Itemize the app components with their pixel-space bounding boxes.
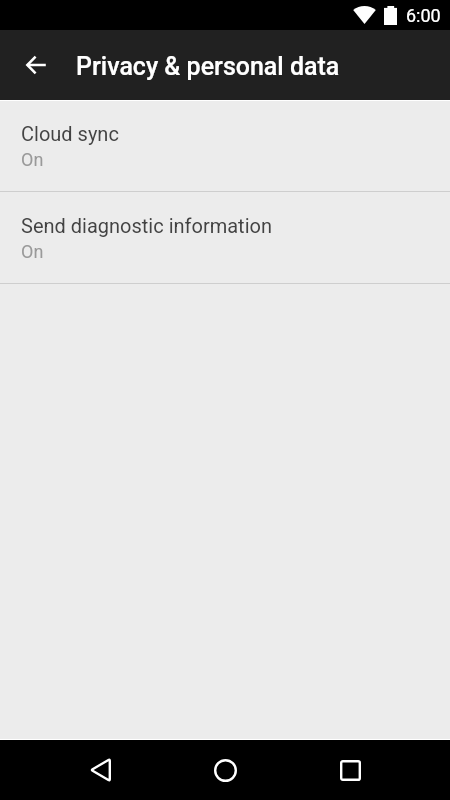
- button[interactable]: Recent apps: [300, 740, 400, 800]
- staticText: Send diagnostic information: [21, 214, 272, 237]
- button[interactable]: Back: [50, 740, 150, 800]
- staticText: On: [21, 241, 44, 262]
- button[interactable]: Home: [175, 740, 275, 800]
- button[interactable]: Send diagnostic information: [0, 192, 450, 283]
- staticText: Cloud sync: [21, 122, 119, 145]
- button[interactable]: Navigate up: [14, 43, 58, 87]
- staticText: 6:00: [406, 5, 441, 26]
- staticText: On: [21, 149, 44, 170]
- staticText: Privacy & personal data: [76, 52, 340, 81]
- button[interactable]: Cloud sync: [0, 101, 450, 191]
